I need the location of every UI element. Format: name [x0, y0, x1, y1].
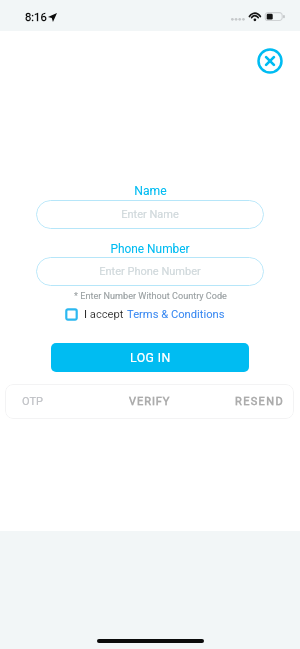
button[interactable]: OTP	[5, 384, 100, 419]
staticText: Enter Phone Number	[99, 265, 201, 278]
staticText: 8:16	[25, 11, 47, 24]
staticText: I accept	[84, 308, 127, 321]
staticText: OTP	[22, 395, 43, 408]
staticText: LOG IN	[130, 351, 171, 365]
button[interactable]: VERIFY	[100, 384, 200, 419]
button[interactable]: Close	[254, 45, 286, 77]
button[interactable]: Enter Name	[36, 200, 264, 229]
button[interactable]: I accept	[61, 306, 229, 323]
staticText: Terms & Conditions	[127, 308, 225, 321]
staticText: RESEND	[235, 395, 284, 408]
staticText: Phone Number	[110, 242, 190, 256]
staticText: Name	[134, 184, 167, 198]
staticText: Enter Name	[121, 208, 179, 221]
staticText: * Enter Number Without Country Code	[74, 291, 227, 302]
button[interactable]: LOG IN	[51, 343, 249, 372]
button[interactable]: Enter Phone Number	[36, 257, 264, 286]
staticText: VERIFY	[129, 395, 171, 408]
button[interactable]: RESEND	[200, 384, 294, 419]
